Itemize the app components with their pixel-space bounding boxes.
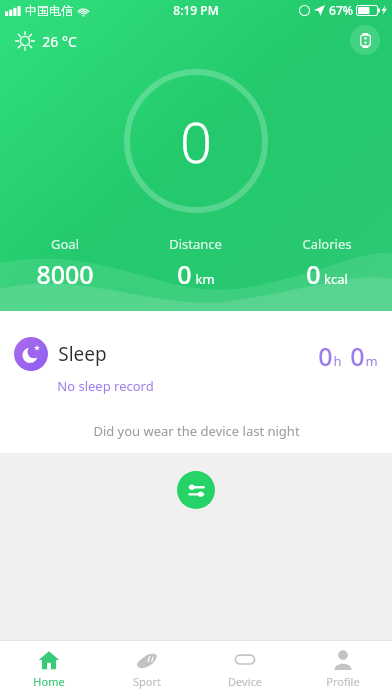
staticText: Device — [228, 674, 262, 689]
button[interactable]: Adjust sleep record — [177, 471, 215, 509]
staticText: Goal — [51, 235, 79, 253]
staticText: 67% — [329, 2, 353, 18]
staticText: Calories — [302, 235, 352, 253]
button[interactable]: Sleep — [0, 311, 392, 453]
staticText: 0 — [180, 103, 212, 179]
staticText: 26 °C — [42, 32, 77, 51]
button[interactable]: Sport — [98, 641, 196, 696]
staticText: 0 — [306, 257, 321, 291]
staticText: h — [333, 352, 342, 370]
staticText: 0 — [350, 339, 365, 373]
button[interactable]: Profile — [294, 641, 392, 696]
staticText: 中国电信 — [25, 3, 73, 18]
button[interactable]: My device — [350, 25, 380, 55]
staticText: Home — [33, 674, 65, 689]
staticText: 0 — [318, 339, 333, 373]
staticText: Sport — [133, 674, 161, 689]
staticText: m — [365, 352, 378, 370]
button[interactable]: 26 °C — [12, 28, 80, 54]
staticText: No sleep record — [57, 377, 154, 395]
button[interactable]: Device — [196, 641, 294, 696]
staticText: Sleep — [58, 341, 107, 367]
staticText: Distance — [169, 235, 222, 253]
button[interactable]: Calories — [261, 235, 392, 291]
button[interactable]: Distance — [130, 235, 261, 291]
staticText: Did you wear the device last night — [93, 422, 300, 440]
staticText: 8000 — [36, 257, 94, 291]
staticText: kcal — [324, 270, 348, 288]
staticText: 0 — [177, 257, 192, 291]
button[interactable]: 0 — [124, 69, 268, 213]
button[interactable]: Goal — [0, 235, 130, 291]
staticText: km — [195, 270, 215, 288]
staticText: Profile — [326, 674, 360, 689]
button[interactable]: Home — [0, 641, 98, 696]
staticText: 8:19 PM — [173, 2, 219, 18]
